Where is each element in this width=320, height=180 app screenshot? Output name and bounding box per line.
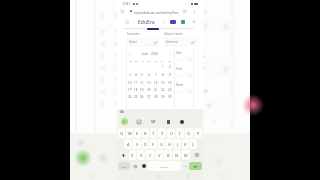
button[interactable]: 27 bbox=[145, 93, 152, 100]
button[interactable]: Search bbox=[160, 18, 168, 26]
button[interactable]: T bbox=[150, 128, 157, 138]
button[interactable]: R bbox=[142, 128, 149, 138]
button[interactable]: 15 bbox=[159, 79, 166, 86]
button[interactable]: 20 bbox=[145, 86, 152, 93]
button[interactable]: 23 bbox=[166, 86, 173, 93]
button[interactable]: ?123 bbox=[118, 162, 130, 170]
button[interactable]: G bbox=[158, 139, 165, 149]
button[interactable]: 3 bbox=[127, 71, 133, 79]
button[interactable]: J bbox=[174, 139, 181, 149]
button[interactable]: Selected bbox=[164, 38, 196, 46]
button[interactable]: 17 bbox=[127, 86, 133, 93]
button[interactable]: C bbox=[146, 150, 154, 160]
button[interactable]: 26 bbox=[139, 93, 145, 100]
button[interactable]: 13 bbox=[145, 79, 152, 86]
button[interactable]: K bbox=[182, 139, 189, 149]
button[interactable]: 2 bbox=[166, 63, 173, 71]
button[interactable]: Previous month bbox=[127, 52, 132, 57]
button[interactable]: English bbox=[148, 161, 181, 171]
button[interactable]: 28 bbox=[152, 93, 159, 100]
button[interactable]: 14 bbox=[152, 79, 159, 86]
button[interactable]: 11 bbox=[133, 79, 139, 86]
button[interactable]: Notifications bbox=[179, 18, 187, 26]
button[interactable]: — bbox=[176, 72, 192, 79]
button[interactable]: B bbox=[164, 150, 172, 160]
button[interactable]: 22 bbox=[159, 86, 166, 93]
button[interactable]: Google search bbox=[117, 116, 131, 127]
button[interactable]: 29 bbox=[159, 93, 166, 100]
button[interactable]: 8 bbox=[159, 71, 166, 79]
button[interactable]: I bbox=[176, 128, 184, 138]
button[interactable]: 9 bbox=[166, 71, 173, 79]
button[interactable]: 24 bbox=[127, 93, 133, 100]
button[interactable]: W bbox=[126, 128, 133, 138]
button[interactable]: N bbox=[173, 150, 181, 160]
button[interactable]: D bbox=[142, 139, 149, 149]
button[interactable]: V bbox=[155, 150, 163, 160]
button[interactable]: Shift bbox=[118, 150, 128, 160]
button[interactable]: Enter bbox=[189, 162, 202, 170]
button[interactable]: 6 bbox=[145, 71, 152, 79]
button[interactable]: More options bbox=[191, 8, 197, 14]
button[interactable]: 18 bbox=[133, 86, 139, 93]
button[interactable]: F bbox=[150, 139, 157, 149]
button[interactable]: P bbox=[194, 128, 202, 138]
button[interactable]: Account bbox=[190, 18, 198, 26]
button[interactable]: 5 bbox=[139, 71, 145, 79]
button[interactable]: 10 bbox=[127, 79, 133, 86]
button[interactable]: L bbox=[190, 139, 197, 149]
button[interactable]: Period bbox=[182, 161, 188, 171]
button[interactable]: Clipboard bbox=[161, 116, 175, 127]
button[interactable]: Stickers bbox=[131, 116, 146, 127]
button[interactable]: 21 bbox=[152, 86, 159, 93]
button[interactable]: Emoji bbox=[131, 161, 139, 171]
button[interactable]: 4 bbox=[133, 71, 139, 79]
button[interactable]: — bbox=[176, 88, 192, 95]
button[interactable]: X bbox=[137, 150, 145, 160]
button[interactable]: Next month bbox=[168, 52, 173, 57]
button[interactable]: Backspace bbox=[191, 150, 202, 160]
button[interactable]: 19 bbox=[139, 86, 145, 93]
button[interactable]: Voice input bbox=[140, 161, 147, 171]
button[interactable]: E bbox=[134, 128, 141, 138]
button[interactable]: M bbox=[182, 150, 190, 160]
button[interactable]: Y bbox=[158, 128, 166, 138]
button[interactable]: Page info bbox=[119, 8, 126, 15]
button[interactable]: Messages bbox=[169, 18, 177, 26]
button[interactable]: 1 bbox=[159, 63, 166, 71]
button[interactable]: Reload bbox=[181, 8, 188, 15]
button[interactable]: Z bbox=[129, 150, 136, 160]
button[interactable]: 16 bbox=[166, 79, 173, 86]
button[interactable]: 7 bbox=[152, 71, 159, 79]
button[interactable]: Select bbox=[127, 38, 159, 46]
button[interactable]: S bbox=[133, 139, 141, 149]
button[interactable]: 12 bbox=[139, 79, 145, 86]
button[interactable]: U bbox=[167, 128, 175, 138]
button[interactable]: 30 bbox=[166, 93, 173, 100]
button[interactable]: GIF bbox=[146, 116, 161, 127]
button[interactable]: Q bbox=[118, 128, 125, 138]
button[interactable]: Menu bbox=[123, 18, 131, 26]
button[interactable]: A bbox=[124, 139, 132, 149]
button[interactable]: H bbox=[166, 139, 173, 149]
button[interactable]: Settings bbox=[175, 116, 189, 127]
button[interactable]: 25 bbox=[133, 93, 139, 100]
button[interactable]: — bbox=[176, 56, 192, 63]
button[interactable]: O bbox=[185, 128, 193, 138]
